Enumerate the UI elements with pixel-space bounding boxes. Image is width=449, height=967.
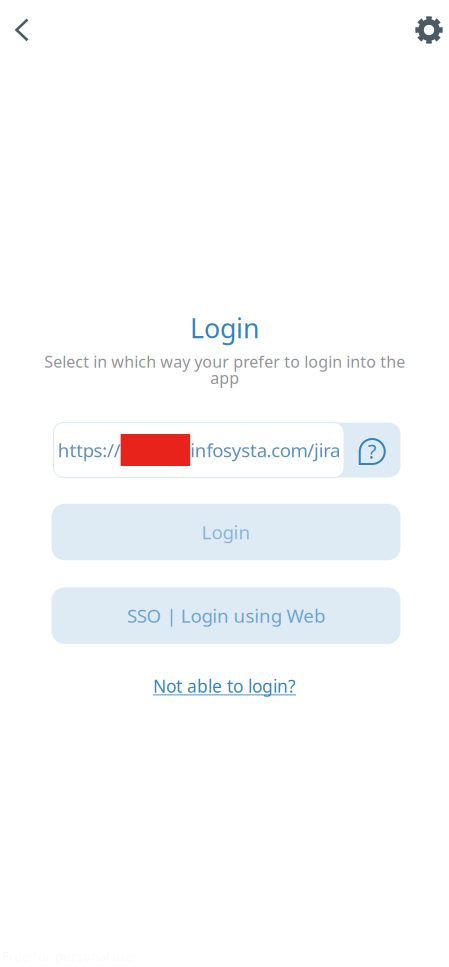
button[interactable]: Login [51,504,400,560]
staticText: SSO | Login using Web [127,603,325,628]
staticText: Select in which way your prefer to login… [44,351,405,388]
button[interactable]: SSO | Login using Web [51,587,400,644]
button[interactable]: Back [0,8,44,52]
button[interactable]: Settings [407,8,449,52]
staticText: ? [368,438,377,464]
staticText: https:// [58,438,121,462]
staticText: Login [201,520,250,544]
button[interactable]: Help [344,422,400,477]
staticText: infosysta.com/jira [190,438,340,462]
button[interactable]: Not able to login? [124,671,324,701]
staticText: Login [190,310,259,346]
staticText: Not able to login? [153,674,296,697]
